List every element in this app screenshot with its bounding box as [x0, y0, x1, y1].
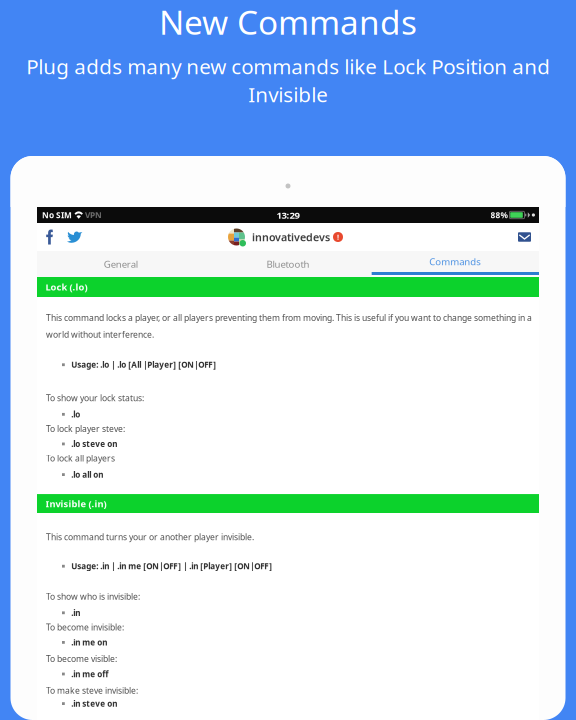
staticText: Invisible (.in)	[45, 497, 106, 510]
button[interactable]: Commands	[372, 251, 539, 277]
staticText: This command locks a player, or all play…	[46, 312, 532, 324]
staticText: 13:29	[276, 208, 299, 222]
staticText: .in me off	[71, 668, 108, 679]
staticText: This command turns your or another playe…	[46, 531, 254, 543]
button[interactable]: General	[37, 251, 204, 277]
staticText: To become visible:	[46, 653, 117, 664]
staticText: Usage: .in | .in me [ON|OFF] | .in [Play…	[71, 561, 272, 572]
staticText: New Commands	[159, 0, 417, 44]
staticText: !	[337, 232, 339, 242]
staticText: Lock (.lo)	[45, 281, 87, 293]
staticText: innovativedevs	[252, 230, 330, 244]
button[interactable]: Twitter	[60, 223, 90, 251]
staticText: To show who is invisible:	[46, 591, 140, 602]
button[interactable]: Facebook	[39, 223, 60, 251]
staticText: .in me on	[71, 637, 107, 648]
staticText: .in steve on	[71, 698, 117, 709]
button[interactable]: Bluetooth	[204, 251, 372, 277]
button[interactable]: Mail	[514, 223, 535, 251]
staticText: .lo	[71, 409, 80, 420]
staticText: To make steve invisible:	[46, 684, 138, 696]
staticText: .lo steve on	[71, 438, 117, 449]
staticText: Bluetooth	[266, 257, 309, 271]
staticText: Commands	[429, 255, 481, 268]
staticText: To show your lock status:	[46, 392, 144, 404]
button[interactable]: innovativedevs	[228, 228, 343, 245]
staticText: 88%	[490, 209, 507, 221]
staticText: To lock player steve:	[46, 423, 125, 434]
staticText: Usage: .lo | .lo [All |Player] [ON|OFF]	[71, 359, 216, 370]
staticText: To lock all players	[46, 452, 115, 464]
staticText: To become invisible:	[46, 621, 124, 633]
staticText: .lo all on	[71, 469, 103, 480]
staticText: VPN	[85, 209, 102, 221]
staticText: Plug adds many new commands like Lock Po…	[26, 52, 550, 108]
staticText: world without interference.	[46, 329, 154, 340]
staticText: .in	[71, 607, 80, 618]
staticText: General	[104, 257, 138, 271]
staticText: No SIM	[42, 209, 72, 221]
